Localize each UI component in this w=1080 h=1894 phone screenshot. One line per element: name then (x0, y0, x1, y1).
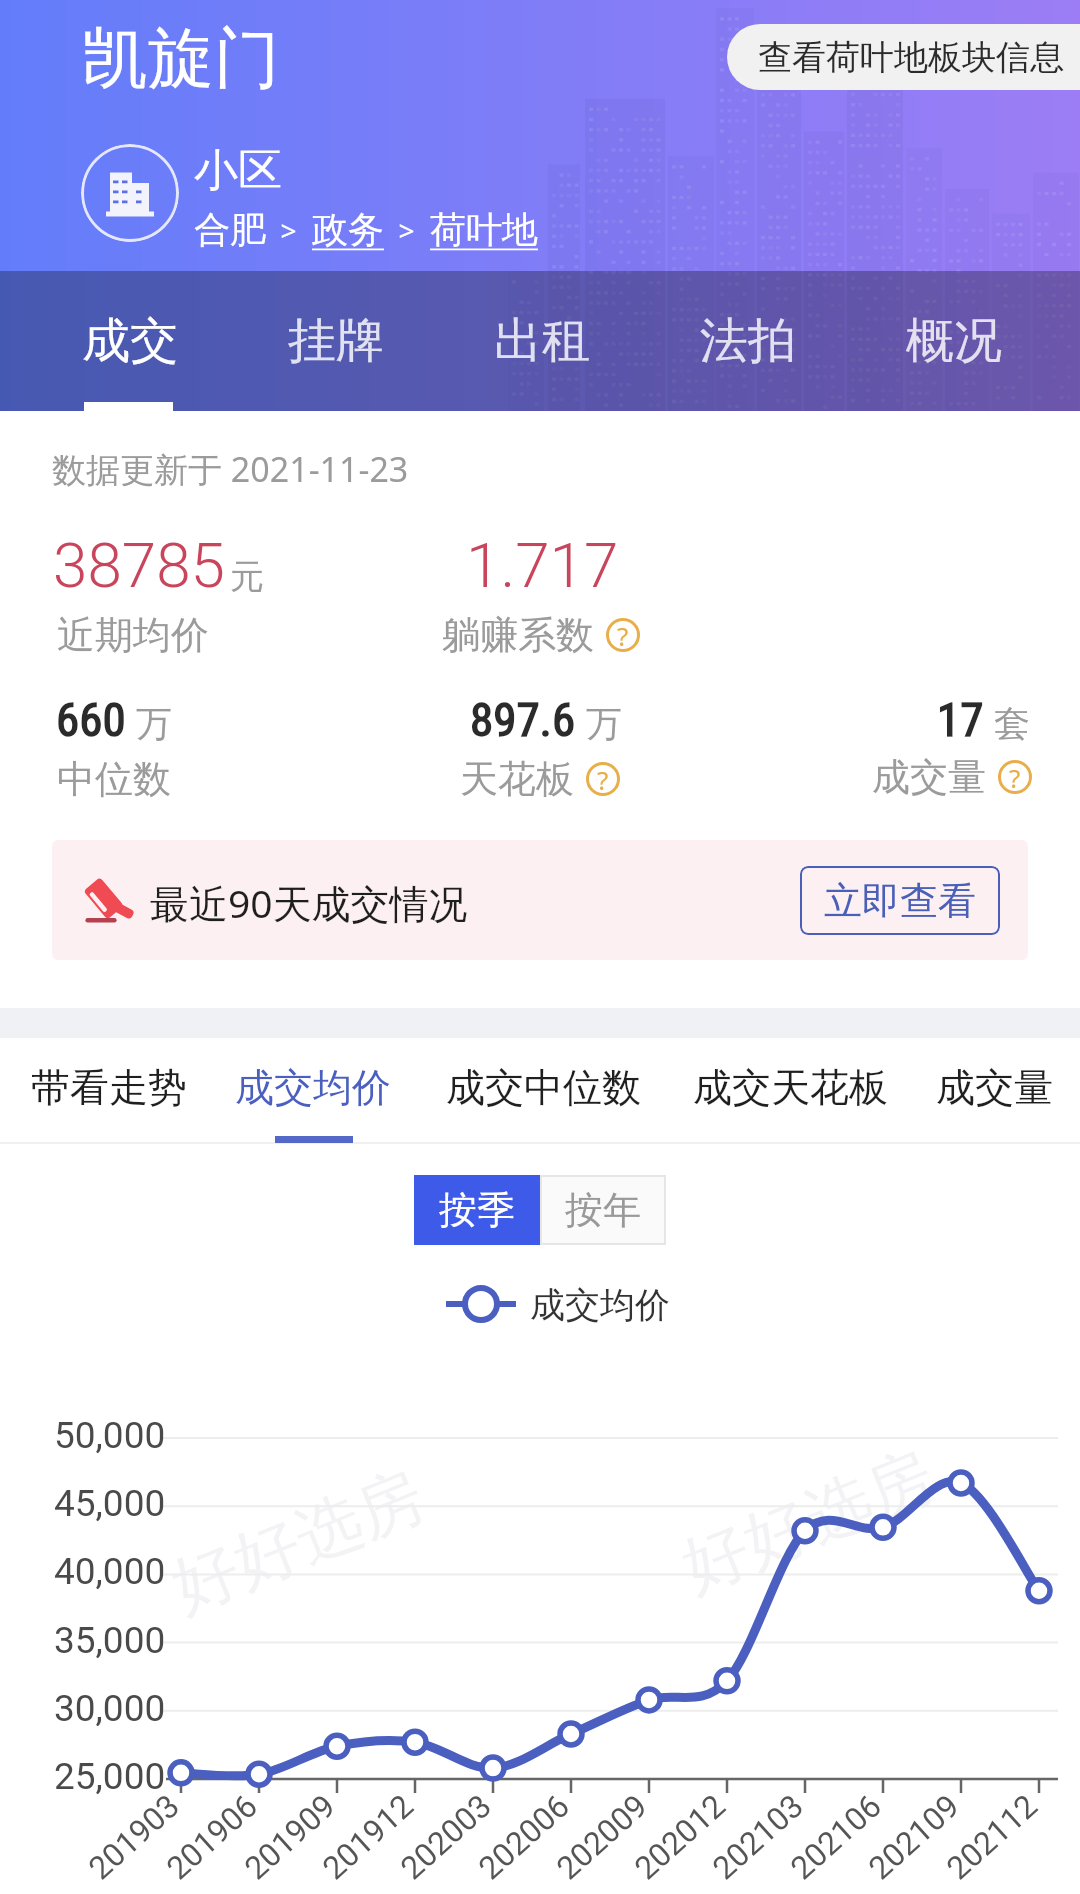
button[interactable]: 出租 (439, 271, 645, 411)
staticText: ? (617, 618, 629, 652)
staticText: 好好选房 (160, 1454, 436, 1629)
staticText: 立即查看 (824, 877, 976, 925)
staticText: 成交均价 (235, 1063, 391, 1112)
staticText: 好好选房 (670, 1434, 946, 1609)
staticText: 套 (994, 701, 1030, 746)
staticText: ? (597, 762, 609, 796)
staticText: 荷叶地 (430, 207, 538, 252)
staticText: 躺赚系数 (442, 611, 594, 659)
button[interactable]: 查看荷叶地板块信息 (727, 24, 1080, 90)
staticText: 出租 (494, 311, 590, 371)
staticText: ? (1009, 760, 1021, 794)
staticText: 概况 (906, 311, 1002, 371)
staticText: 查看荷叶地板块信息 (758, 36, 1064, 79)
button[interactable]: 挂牌 (233, 271, 439, 411)
button[interactable]: 按年 (540, 1175, 666, 1245)
button[interactable]: 成交情况 (52, 840, 1028, 960)
staticText: 45,000 (54, 1482, 166, 1525)
staticText: 挂牌 (288, 311, 384, 371)
staticText: 30,000 (54, 1687, 166, 1730)
staticText: 202103 (705, 1787, 811, 1887)
staticText: 202009 (549, 1787, 655, 1887)
staticText: 万 (136, 701, 172, 746)
staticText: 202006 (471, 1787, 577, 1887)
staticText: > (384, 211, 430, 249)
staticText: 25,000 (54, 1755, 166, 1798)
staticText: 万 (586, 701, 622, 746)
button[interactable]: 成交均价 (226, 1045, 400, 1129)
button[interactable]: 成交 (27, 271, 233, 411)
staticText: 201909 (237, 1787, 343, 1887)
staticText: 成交中位数 (446, 1063, 641, 1112)
staticText: 合肥 (194, 207, 266, 252)
staticText: 成交量 (872, 753, 986, 801)
button[interactable]: 成交量 (928, 1045, 1060, 1129)
staticText: 法拍 (700, 311, 796, 371)
staticText: 中位数 (57, 755, 171, 803)
staticText: 201912 (315, 1787, 421, 1887)
staticText: 897.6 (470, 692, 576, 747)
staticText: 成交天花板 (693, 1063, 888, 1112)
staticText: 元 (230, 555, 264, 598)
button[interactable]: 带看走势 (22, 1045, 196, 1129)
staticText: 17 (937, 692, 984, 747)
staticText: 政务 (312, 207, 384, 252)
staticText: 50,000 (54, 1414, 166, 1457)
staticText: 带看走势 (31, 1063, 187, 1112)
button[interactable]: 成交中位数 (438, 1045, 648, 1129)
staticText: 小区 (194, 143, 282, 198)
staticText: 202003 (393, 1787, 499, 1887)
staticText: 202109 (861, 1787, 967, 1887)
staticText: 202106 (783, 1787, 889, 1887)
button[interactable]: 立即查看 (800, 866, 1000, 935)
staticText: 成交均价 (530, 1283, 670, 1327)
staticText: 成交量 (936, 1063, 1053, 1112)
button[interactable]: 按季 (414, 1175, 540, 1245)
staticText: 成交 (82, 311, 178, 371)
staticText: 1.717 (466, 529, 619, 602)
staticText: 201906 (159, 1787, 265, 1887)
staticText: 天花板 (460, 755, 574, 803)
staticText: 202012 (627, 1787, 733, 1887)
staticText: 201903 (81, 1787, 187, 1887)
staticText: 按季 (439, 1186, 515, 1234)
staticText: 40,000 (54, 1550, 166, 1593)
staticText: 最近90天成交情况 (150, 876, 468, 929)
staticText: 数据更新于 2021-11-23 (52, 446, 409, 492)
other: 成交情况 (80, 870, 140, 930)
staticText: 凯旋门 (82, 17, 280, 100)
button[interactable]: 法拍 (645, 271, 851, 411)
staticText: 35,000 (54, 1619, 166, 1662)
staticText: > (266, 211, 312, 249)
staticText: 按年 (565, 1186, 641, 1234)
staticText: 近期均价 (57, 611, 209, 659)
staticText: 202112 (939, 1787, 1045, 1887)
staticText: 660 (56, 692, 126, 747)
button[interactable]: 成交天花板 (686, 1045, 894, 1129)
button[interactable]: 概况 (851, 271, 1057, 411)
staticText: 38785 (53, 529, 225, 602)
